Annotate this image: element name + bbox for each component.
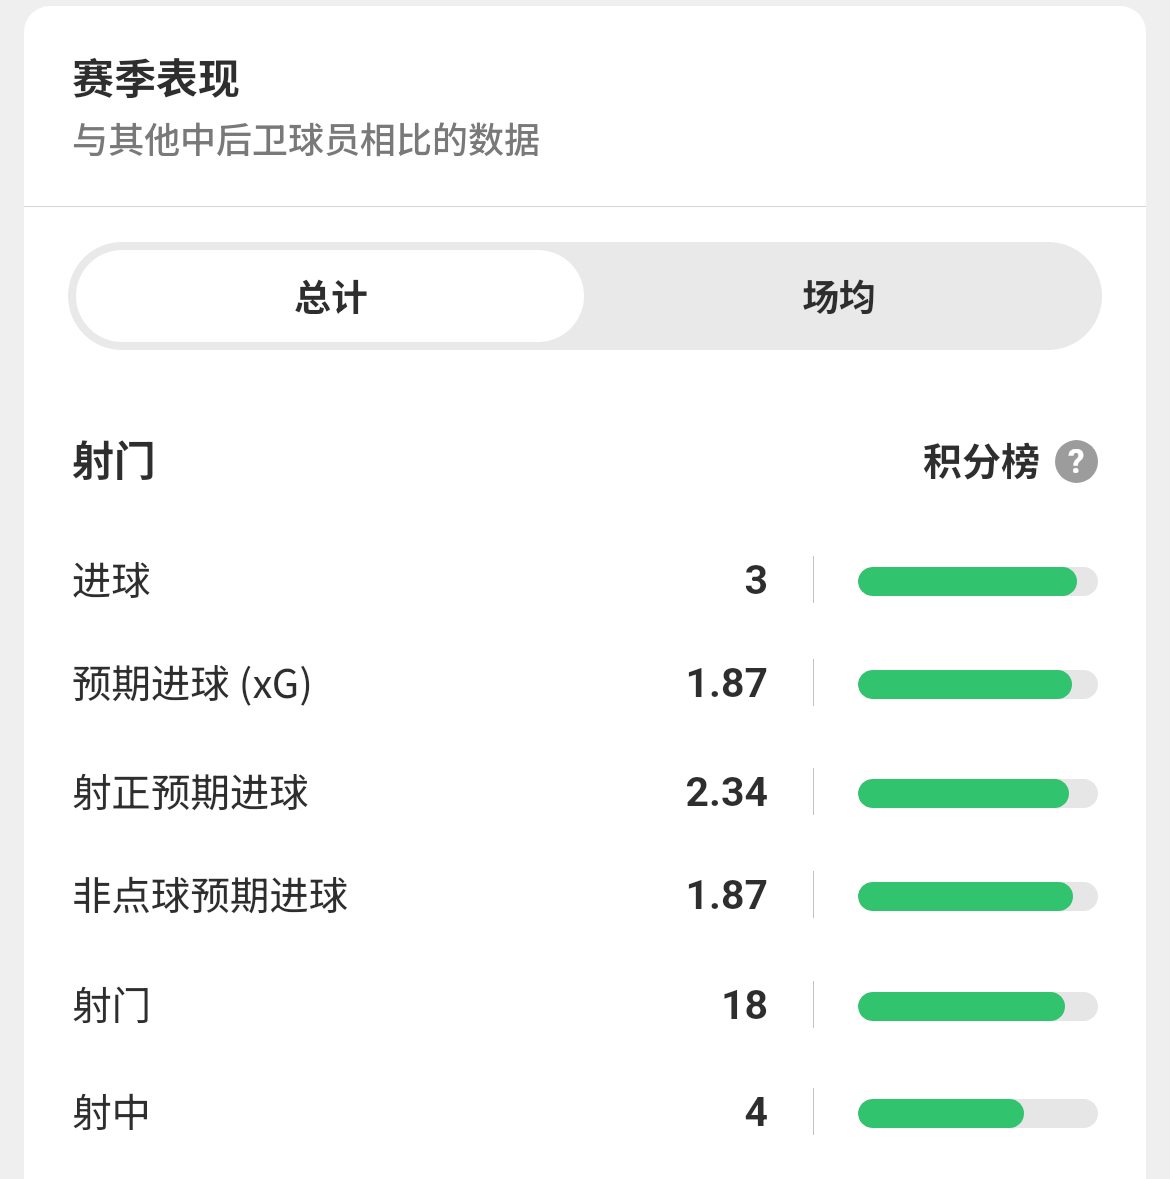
staticText: 预期进球 (xG) (72, 652, 313, 709)
staticText: 场均 (802, 268, 876, 322)
button[interactable]: 射正预期进球 (24, 740, 1146, 846)
staticText: 4 (588, 1088, 768, 1136)
button[interactable]: 进球 (24, 528, 1146, 634)
staticText: 2.34 (588, 768, 768, 816)
button[interactable]: 预期进球 (xG) (24, 631, 1146, 737)
staticText: 与其他中后卫球员相比的数据 (72, 111, 541, 163)
staticText: 积分榜 (923, 431, 1041, 487)
button[interactable]: 射中 (24, 1060, 1146, 1166)
staticText: 射正预期进球 (72, 761, 309, 818)
other: Help (1055, 440, 1098, 483)
button[interactable]: 非点球预期进球 (24, 843, 1146, 949)
staticText: 射中 (72, 1081, 151, 1138)
button[interactable]: 总计 (68, 242, 585, 350)
staticText: 总计 (294, 268, 368, 322)
staticText: 非点球预期进球 (72, 864, 349, 921)
staticText: 3 (588, 556, 768, 604)
staticText: 1.87 (588, 659, 768, 707)
staticText: 射门 (72, 427, 157, 488)
staticText: ? (1068, 442, 1085, 481)
staticText: 18 (588, 981, 768, 1029)
staticText: 射门 (72, 974, 151, 1031)
button[interactable]: 场均 (585, 242, 1102, 350)
button[interactable]: 射门 (24, 953, 1146, 1059)
staticText: 赛季表现 (72, 45, 241, 106)
staticText: 进球 (72, 549, 151, 606)
button[interactable]: 积分榜 (922, 430, 1099, 486)
staticText: 1.87 (588, 871, 768, 919)
